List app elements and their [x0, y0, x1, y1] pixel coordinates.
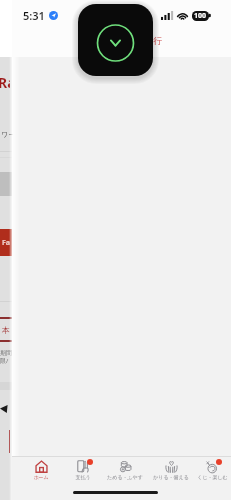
staticText: 支払う [75, 474, 91, 480]
button[interactable]: 支払う [61, 457, 105, 480]
button[interactable]: かりる・備える [149, 457, 193, 480]
button[interactable]: くじ・楽しむ [190, 457, 231, 480]
staticText: 行 [153, 35, 162, 46]
staticText: Fa [2, 238, 11, 248]
other: Download complete [78, 4, 153, 76]
staticText: Ra [0, 73, 10, 92]
staticText: 本 [2, 325, 10, 335]
staticText: くじ・楽しむ [197, 474, 228, 480]
staticText: ためる・ふやす [107, 474, 143, 480]
staticText: ホーム [33, 474, 49, 480]
staticText: かりる・備える [153, 474, 189, 480]
staticText: 期間 限/ [0, 349, 12, 365]
button[interactable]: ためる・ふやす [103, 457, 147, 480]
staticText: ワー [1, 130, 13, 139]
staticText: 5:31 [23, 8, 45, 23]
button[interactable]: ホーム [19, 457, 63, 480]
staticText: 100 [194, 11, 207, 21]
